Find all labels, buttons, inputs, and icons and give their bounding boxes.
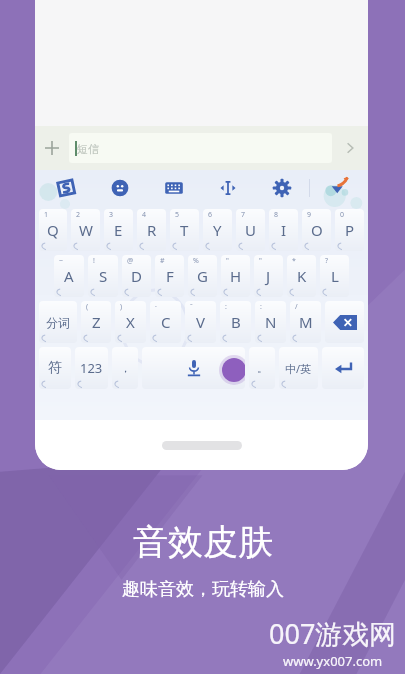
staticText: H xyxy=(230,266,242,286)
staticText: 007游戏网 xyxy=(269,615,397,652)
button[interactable]: 。 xyxy=(249,347,275,389)
button[interactable]: 8 xyxy=(269,209,298,251)
staticText: 中/英 xyxy=(285,361,312,376)
staticText: B xyxy=(231,312,241,332)
button[interactable]: Skin store xyxy=(310,170,364,206)
staticText: J xyxy=(266,266,271,286)
staticText: * xyxy=(292,256,296,266)
staticText: 音效皮肤 xyxy=(133,520,273,564)
button[interactable]: ? xyxy=(320,255,349,297)
button[interactable]: Emoji xyxy=(93,170,147,206)
button[interactable]: 短信 xyxy=(69,133,332,163)
button[interactable]: 123 xyxy=(75,347,108,389)
button[interactable]: 9 xyxy=(302,209,331,251)
staticText: " xyxy=(226,256,229,266)
button[interactable]: Keyboard layout xyxy=(147,170,201,206)
staticText: Y xyxy=(213,220,222,240)
staticText: K xyxy=(297,266,307,286)
staticText: ( xyxy=(86,302,89,312)
staticText: ~ xyxy=(59,256,64,266)
button[interactable]: / xyxy=(290,301,321,343)
staticText: N xyxy=(265,312,277,332)
button[interactable]: Space / Voice input xyxy=(142,347,245,389)
button[interactable]: * xyxy=(287,255,316,297)
button[interactable]: 5 xyxy=(170,209,199,251)
button[interactable]: Enter xyxy=(322,347,364,389)
staticText: : xyxy=(260,302,262,312)
staticText: " xyxy=(259,256,262,266)
button[interactable]: " xyxy=(221,255,250,297)
button[interactable]: 3 xyxy=(104,209,133,251)
staticText: 3 xyxy=(109,210,114,220)
staticText: C xyxy=(161,312,171,332)
staticText: I xyxy=(281,220,287,240)
button[interactable]: ~ xyxy=(54,255,84,297)
staticText: @ xyxy=(127,256,134,266)
button[interactable]: % xyxy=(188,255,217,297)
button[interactable]: Add attachment xyxy=(35,126,69,170)
staticText: 0 xyxy=(340,210,345,220)
button[interactable]: 1 xyxy=(39,209,67,251)
staticText: 7 xyxy=(241,210,246,220)
staticText: ， xyxy=(120,361,131,375)
button[interactable]: · xyxy=(150,301,181,343)
staticText: A xyxy=(64,266,74,286)
button[interactable]: ， xyxy=(112,347,138,389)
staticText: / xyxy=(295,302,298,312)
staticText: · xyxy=(155,302,157,312)
button[interactable]: 2 xyxy=(71,209,100,251)
staticText: 。 xyxy=(257,361,268,375)
staticText: S xyxy=(99,266,108,286)
staticText: 9 xyxy=(307,210,312,220)
button[interactable]: 4 xyxy=(137,209,166,251)
button[interactable]: 0 xyxy=(335,209,364,251)
button[interactable]: Sogou logo xyxy=(39,170,93,206)
staticText: www.yx007.com xyxy=(283,652,383,670)
button[interactable]: 7 xyxy=(236,209,265,251)
staticText: E xyxy=(114,220,123,240)
staticText: ? xyxy=(325,256,329,266)
button[interactable]: 6 xyxy=(203,209,232,251)
staticText: G xyxy=(197,266,208,286)
button[interactable]: # xyxy=(155,255,184,297)
button[interactable]: Backspace xyxy=(325,301,364,343)
button[interactable]: Settings xyxy=(255,170,309,206)
button[interactable]: @ xyxy=(122,255,151,297)
button[interactable]: Cursor move xyxy=(201,170,255,206)
staticText: 1 xyxy=(44,210,49,220)
staticText: 2 xyxy=(76,210,81,220)
staticText: ˉ xyxy=(190,302,193,312)
staticText: # xyxy=(160,256,165,266)
button[interactable]: 分词 xyxy=(39,301,77,343)
button[interactable]: ! xyxy=(88,255,118,297)
staticText: L xyxy=(331,266,339,286)
staticText: D xyxy=(131,266,142,286)
staticText: ! xyxy=(93,256,95,266)
button[interactable]: 中/英 xyxy=(279,347,318,389)
staticText: R xyxy=(147,220,157,240)
button[interactable]: ˉ xyxy=(185,301,216,343)
staticText: M xyxy=(299,312,313,332)
staticText: P xyxy=(345,220,355,240)
button[interactable]: 符 xyxy=(39,347,71,389)
staticText: T xyxy=(180,220,189,240)
button[interactable]: : xyxy=(220,301,251,343)
staticText: : xyxy=(225,302,227,312)
staticText: 5 xyxy=(175,210,180,220)
staticText: 分词 xyxy=(46,315,70,330)
button[interactable]: " xyxy=(254,255,283,297)
staticText: W xyxy=(79,220,93,240)
button[interactable]: : xyxy=(255,301,286,343)
staticText: 123 xyxy=(80,359,103,377)
staticText: 4 xyxy=(142,210,147,220)
staticText: U xyxy=(245,220,256,240)
button[interactable]: Send xyxy=(332,126,368,170)
button[interactable]: ( xyxy=(81,301,111,343)
staticText: 6 xyxy=(208,210,213,220)
staticText: 短信 xyxy=(77,142,99,156)
staticText: % xyxy=(193,256,199,266)
staticText: 趣味音效，玩转输入 xyxy=(122,578,284,601)
staticText: F xyxy=(166,266,174,286)
button[interactable]: ) xyxy=(115,301,146,343)
staticText: Z xyxy=(92,312,101,332)
